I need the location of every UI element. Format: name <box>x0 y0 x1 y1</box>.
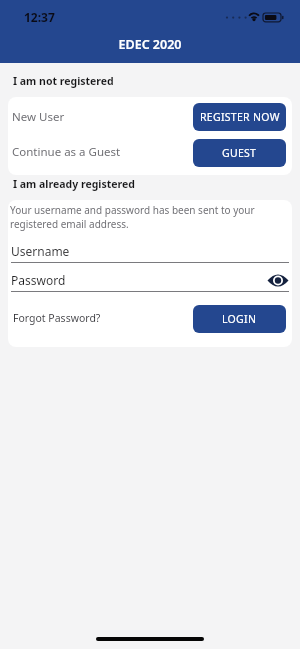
button[interactable]: GUEST <box>193 139 286 167</box>
staticText: REGISTER NOW <box>200 110 280 124</box>
staticText: LOGIN <box>222 312 257 326</box>
staticText: EDEC 2020 <box>0 36 300 53</box>
staticText: Your username and password has been sent… <box>10 203 255 231</box>
button[interactable] <box>267 273 289 288</box>
button[interactable]: LOGIN <box>193 305 286 333</box>
staticText: Username <box>11 243 70 259</box>
staticText: Continue as a Guest <box>12 144 121 160</box>
staticText: I am not registered <box>13 74 114 88</box>
staticText: 12:37 <box>24 9 55 25</box>
staticText: GUEST <box>222 146 257 160</box>
staticText: New User <box>12 109 65 125</box>
staticText: I am already registered <box>13 177 135 191</box>
staticText: Password <box>11 272 66 288</box>
button[interactable]: Forgot Password? <box>13 311 101 325</box>
button[interactable]: REGISTER NOW <box>193 103 286 131</box>
